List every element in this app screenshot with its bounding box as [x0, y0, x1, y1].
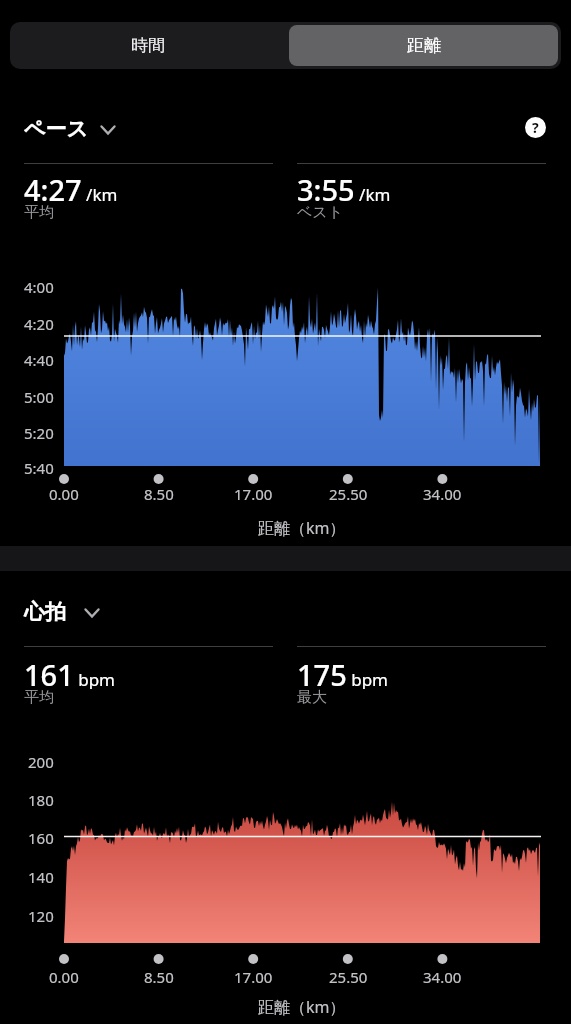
staticText: 0.00	[49, 484, 79, 502]
staticText: 4:27 /km	[24, 170, 118, 204]
staticText: 5:20	[24, 423, 54, 443]
staticText: 140	[28, 867, 54, 887]
staticText: 平均	[24, 203, 54, 220]
staticText: 34.00	[423, 484, 462, 502]
staticText: 25.50	[329, 484, 368, 502]
staticText: 200	[28, 752, 54, 772]
staticText: 距離（km）	[258, 517, 346, 539]
staticText: 心拍	[24, 599, 66, 625]
button[interactable]: ?	[525, 117, 546, 138]
staticText: 5:00	[24, 387, 54, 407]
staticText: 4:40	[24, 350, 54, 370]
staticText: ベスト	[297, 203, 344, 220]
staticText: 距離	[407, 35, 441, 56]
staticText: 0.00	[49, 967, 79, 985]
staticText: 3:55 /km	[297, 170, 391, 204]
staticText: 161 bpm	[24, 655, 115, 689]
staticText: 5:40	[24, 458, 54, 478]
staticText: 17.00	[234, 484, 273, 502]
staticText: ペース	[24, 116, 88, 142]
staticText: 4:20	[24, 314, 54, 334]
staticText: 距離（km）	[258, 996, 346, 1018]
staticText: 34.00	[423, 967, 462, 985]
staticText: 時間	[131, 35, 165, 56]
staticText: 17.00	[234, 967, 273, 985]
staticText: 25.50	[329, 967, 368, 985]
button[interactable]: 距離	[289, 25, 558, 66]
button[interactable]: 心拍	[24, 597, 110, 627]
staticText: 8.50	[144, 484, 174, 502]
staticText: 120	[28, 906, 54, 926]
staticText: 175 bpm	[297, 655, 388, 689]
staticText: 8.50	[144, 967, 174, 985]
button[interactable]: ペース	[24, 114, 126, 144]
staticText: 4:00	[24, 277, 54, 297]
staticText: 最大	[297, 688, 327, 705]
staticText: ?	[532, 118, 539, 137]
staticText: 180	[28, 790, 54, 810]
staticText: 160	[28, 828, 54, 848]
staticText: 平均	[24, 688, 54, 705]
button[interactable]: 時間	[10, 22, 286, 69]
